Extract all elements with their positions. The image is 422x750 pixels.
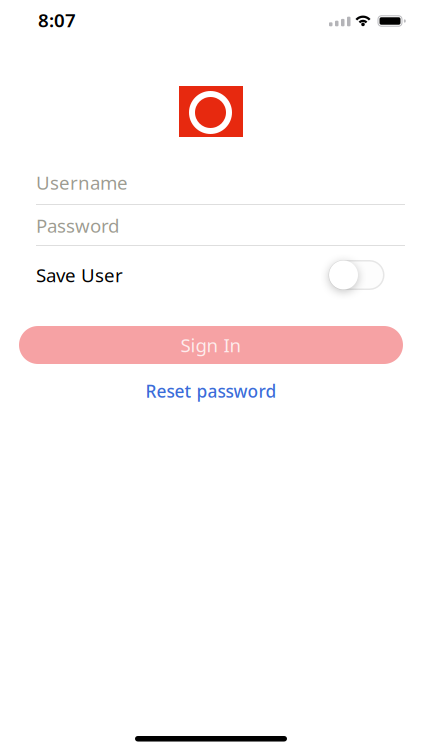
staticText: Username — [36, 170, 128, 195]
button[interactable]: Reset password — [145, 381, 276, 401]
staticText: 8:07 — [38, 8, 76, 32]
textField[interactable]: Username — [36, 170, 405, 195]
staticText: Reset password — [145, 379, 276, 402]
button[interactable]: Sign In — [19, 326, 403, 364]
staticText: Password — [36, 213, 119, 238]
staticText: Save User — [36, 263, 123, 287]
staticText: Sign In — [180, 333, 241, 357]
button[interactable]: Save User — [328, 260, 384, 290]
textField[interactable]: Password — [36, 213, 405, 238]
